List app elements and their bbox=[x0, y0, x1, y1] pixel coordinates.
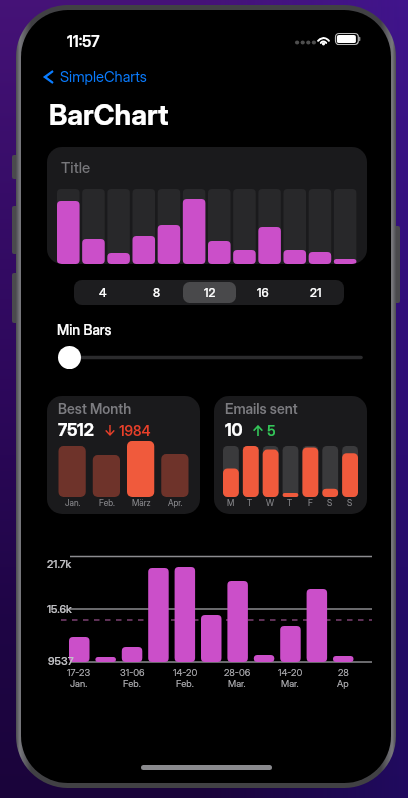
staticText: S bbox=[327, 498, 333, 508]
staticText: 12 bbox=[204, 285, 216, 300]
staticText: 4 bbox=[99, 285, 107, 300]
staticText: T bbox=[287, 498, 293, 508]
staticText: Feb. bbox=[176, 678, 194, 689]
staticText: Feb. bbox=[123, 678, 141, 689]
staticText: 21.7k bbox=[47, 557, 72, 570]
button[interactable]: Min Bars slider bbox=[58, 346, 363, 369]
staticText: 14-20 bbox=[173, 667, 198, 678]
staticText: T bbox=[247, 498, 253, 508]
staticText: BarChart bbox=[49, 97, 169, 131]
staticText: Emails sent bbox=[225, 400, 298, 417]
staticText: M bbox=[227, 498, 235, 508]
staticText: ↓ 1984 bbox=[104, 422, 151, 439]
staticText: März bbox=[132, 498, 151, 508]
staticText: 9537 bbox=[48, 654, 74, 667]
staticText: Feb. bbox=[99, 498, 115, 508]
staticText: Min Bars bbox=[57, 321, 112, 338]
button[interactable]: Emails sent bbox=[214, 396, 367, 514]
staticText: F bbox=[308, 498, 313, 508]
staticText: Mar. bbox=[228, 678, 246, 689]
staticText: W bbox=[266, 498, 275, 508]
staticText: Jan. bbox=[70, 678, 88, 689]
staticText: 28 bbox=[338, 667, 349, 678]
button[interactable]: 4 bbox=[76, 282, 130, 303]
staticText: ↑ 5 bbox=[252, 422, 276, 439]
button[interactable]: SimpleCharts bbox=[41, 64, 147, 90]
button[interactable]: 16 bbox=[236, 282, 289, 303]
staticText: S bbox=[347, 498, 353, 508]
staticText: Apr. bbox=[168, 498, 183, 508]
staticText: Mar. bbox=[281, 678, 299, 689]
staticText: Best Month bbox=[58, 400, 132, 417]
button[interactable]: 8 bbox=[130, 282, 183, 303]
staticText: 11:57 bbox=[67, 32, 100, 51]
staticText: 16 bbox=[257, 285, 269, 300]
button[interactable]: 21 bbox=[289, 282, 342, 303]
staticText: 8 bbox=[153, 285, 161, 300]
staticText: Ap bbox=[337, 678, 349, 689]
staticText: 28-06 bbox=[224, 667, 251, 678]
staticText: 7512 bbox=[58, 420, 94, 441]
staticText: SimpleCharts bbox=[60, 68, 147, 86]
staticText: 21 bbox=[310, 285, 322, 300]
button[interactable]: 12 bbox=[183, 282, 236, 303]
staticText: 14-20 bbox=[278, 667, 303, 678]
staticText: 10 bbox=[225, 420, 243, 441]
staticText: Jan. bbox=[65, 498, 81, 508]
staticText: 15.6k bbox=[47, 602, 72, 615]
staticText: Title bbox=[61, 158, 91, 176]
staticText: 17-23 bbox=[67, 667, 91, 678]
button[interactable]: Best Month bbox=[47, 396, 200, 514]
staticText: 31-06 bbox=[120, 667, 145, 678]
